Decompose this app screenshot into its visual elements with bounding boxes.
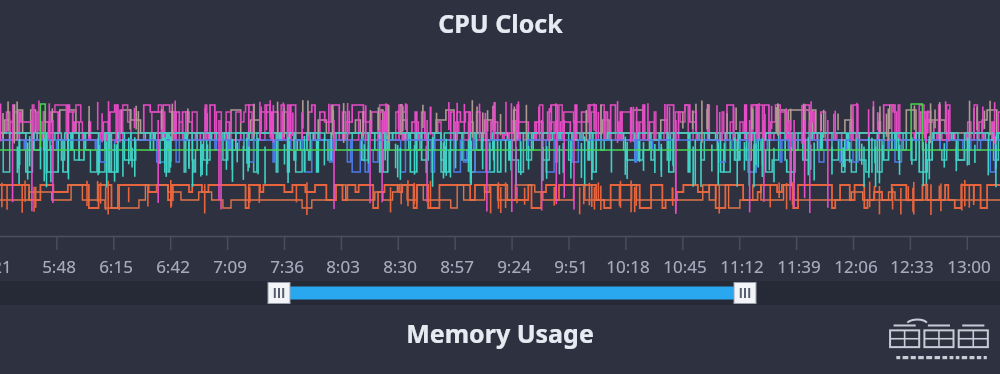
staticText: 7:09 xyxy=(213,255,247,278)
staticText: 12:33 xyxy=(890,255,934,278)
staticText: 13:00 xyxy=(947,255,991,278)
button[interactable]: Time range slider xyxy=(0,281,1000,305)
staticText: 8:30 xyxy=(383,255,417,278)
staticText: 10:45 xyxy=(663,255,707,278)
staticText: 21 xyxy=(0,255,12,278)
staticText: 10:18 xyxy=(606,255,650,278)
staticText: 12:06 xyxy=(834,255,878,278)
staticText: 8:03 xyxy=(326,255,360,278)
button[interactable]: Memory Usage xyxy=(0,310,1000,356)
other: zhidx.com watermark xyxy=(888,316,992,368)
button[interactable]: CPU clock chart xyxy=(0,95,1000,245)
button[interactable]: CPU Clock xyxy=(0,0,1000,46)
staticText: 9:24 xyxy=(497,255,531,278)
staticText: CPU Clock xyxy=(438,6,563,40)
staticText: 11:12 xyxy=(720,255,764,278)
staticText: 8:57 xyxy=(440,255,474,278)
staticText: 7:36 xyxy=(270,255,304,278)
staticText: 6:15 xyxy=(99,255,133,278)
staticText: Memory Usage xyxy=(406,316,594,350)
staticText: 6:42 xyxy=(156,255,190,278)
staticText: 9:51 xyxy=(554,255,588,278)
staticText: 11:39 xyxy=(777,255,821,278)
staticText: 5:48 xyxy=(42,255,76,278)
